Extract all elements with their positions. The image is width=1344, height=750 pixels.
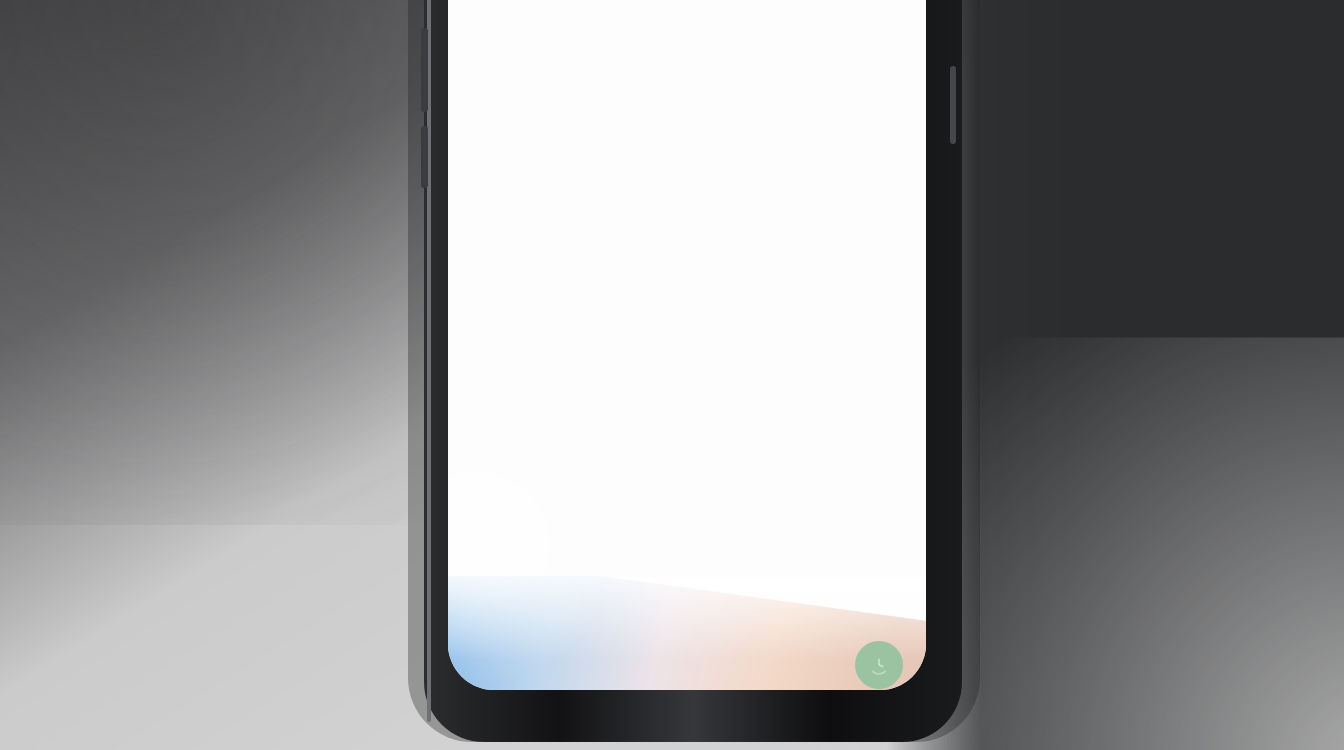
button[interactable]: Compose <box>855 641 903 689</box>
